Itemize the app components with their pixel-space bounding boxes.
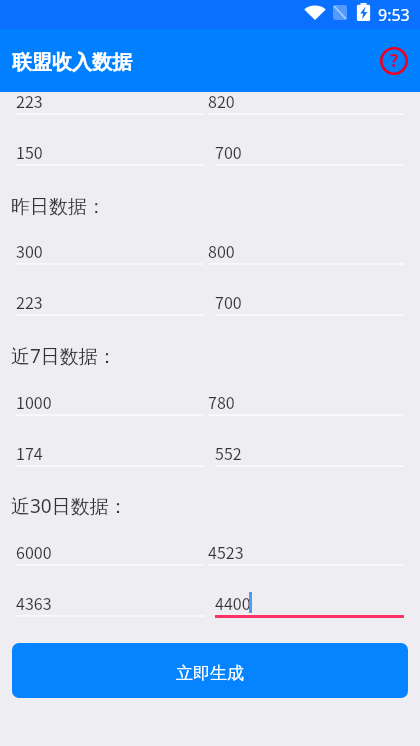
staticText: 9:53 <box>378 4 410 26</box>
button[interactable]: Help <box>374 41 414 81</box>
staticText: 700 <box>215 140 242 163</box>
button[interactable]: 6000 <box>16 527 203 578</box>
button[interactable]: 223 <box>16 277 205 328</box>
staticText: 300 <box>16 239 43 262</box>
staticText: 1000 <box>16 390 52 413</box>
staticText: 700 <box>215 290 242 313</box>
button[interactable]: 174 <box>16 428 205 479</box>
staticText: 4400 <box>215 591 251 614</box>
staticText: 223 <box>16 89 43 112</box>
button[interactable]: 820 <box>208 76 404 127</box>
button[interactable]: 223 <box>16 76 203 127</box>
staticText: 立即生成 <box>176 663 244 684</box>
button[interactable]: 552 <box>215 428 404 479</box>
staticText: 223 <box>16 290 43 313</box>
staticText: 近7日数据： <box>11 343 117 369</box>
staticText: 780 <box>208 390 235 413</box>
staticText: 近30日数据： <box>11 493 128 519</box>
staticText: ? <box>390 49 399 72</box>
staticText: 6000 <box>16 540 52 563</box>
button[interactable]: 4523 <box>208 527 404 578</box>
button[interactable]: 立即生成 <box>12 643 408 698</box>
button[interactable]: 150 <box>16 127 205 178</box>
button[interactable]: 4400 <box>215 578 404 629</box>
button[interactable]: 780 <box>208 377 404 428</box>
staticText: 4523 <box>208 540 244 563</box>
staticText: 174 <box>16 441 43 464</box>
staticText: 800 <box>208 239 235 262</box>
staticText: 150 <box>16 140 43 163</box>
button[interactable]: 300 <box>16 226 203 277</box>
staticText: 昨日数据： <box>11 195 106 219</box>
button[interactable]: 700 <box>215 127 404 178</box>
button[interactable]: 1000 <box>16 377 203 428</box>
button[interactable]: 800 <box>208 226 404 277</box>
button[interactable]: 700 <box>215 277 404 328</box>
staticText: 552 <box>215 441 242 464</box>
button[interactable]: 4363 <box>16 578 205 629</box>
staticText: 联盟收入数据 <box>12 50 132 75</box>
staticText: 4363 <box>16 591 52 614</box>
staticText: 820 <box>208 89 235 112</box>
